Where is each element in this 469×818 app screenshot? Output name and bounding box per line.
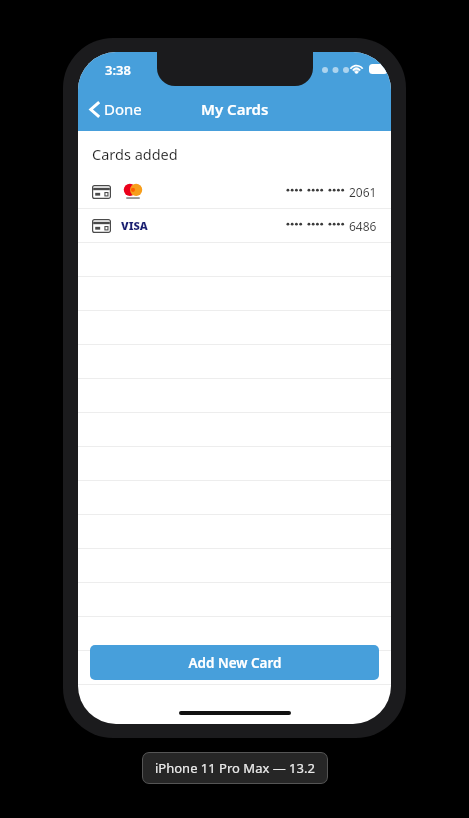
button[interactable]: 2061 (78, 175, 391, 208)
staticText: VISA (121, 218, 148, 233)
staticText: 2061 (349, 184, 377, 200)
button[interactable]: VISA (78, 209, 391, 242)
staticText: 6486 (349, 218, 377, 234)
staticText: iPhone 11 Pro Max — 13.2 (155, 759, 315, 777)
button[interactable]: Done (84, 95, 148, 123)
button[interactable]: Add New Card (90, 645, 379, 680)
staticText: Done (104, 99, 142, 119)
staticText: My Cards (201, 99, 269, 119)
staticText: Cards added (92, 144, 178, 164)
staticText: Add New Card (188, 654, 282, 672)
staticText: 3:38 (105, 61, 131, 79)
